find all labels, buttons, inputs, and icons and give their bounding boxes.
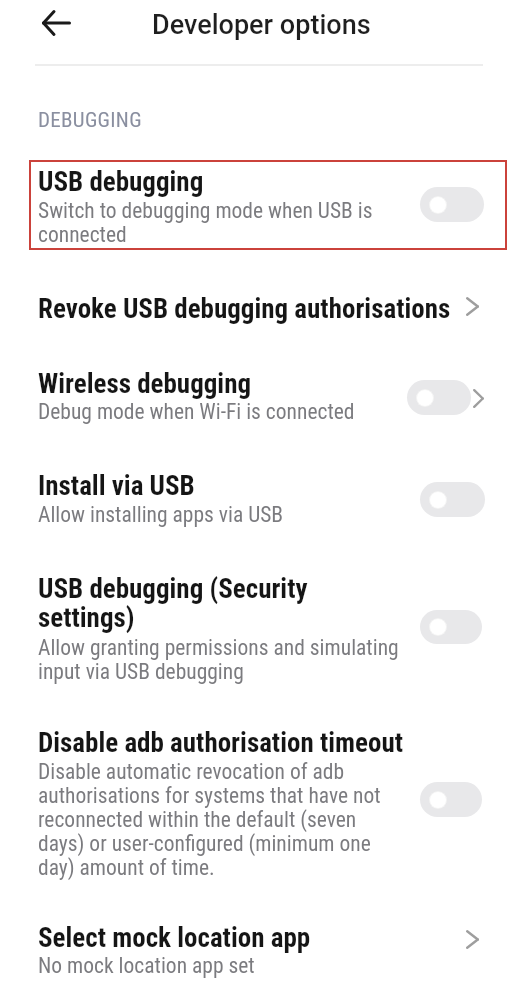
- staticText: DEBUGGING: [38, 108, 142, 133]
- staticText: Revoke USB debugging authorisations: [38, 293, 451, 325]
- staticText: Wireless debugging: [38, 368, 252, 400]
- staticText: USB debugging (Security settings): [38, 573, 308, 634]
- staticText: Allow installing apps via USB: [38, 502, 284, 527]
- staticText: Select mock location app: [38, 922, 311, 954]
- staticText: No mock location app set: [38, 953, 255, 978]
- staticText: USB debugging: [38, 166, 204, 198]
- staticText: Switch to debugging mode when USB is con…: [38, 198, 373, 248]
- staticText: Debug mode when Wi-Fi is connected: [38, 399, 355, 424]
- staticText: Developer options: [152, 9, 371, 41]
- staticText: Disable automatic revocation of adb auth…: [38, 759, 381, 881]
- staticText: Allow granting permissions and simulatin…: [38, 635, 399, 685]
- staticText: Install via USB: [38, 470, 195, 502]
- staticText: Disable adb authorisation timeout: [38, 727, 404, 759]
